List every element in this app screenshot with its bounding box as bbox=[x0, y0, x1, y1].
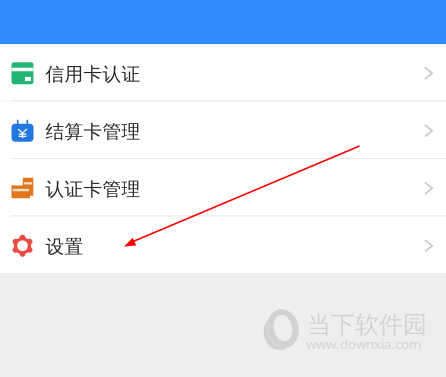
button[interactable]: 认证卡管理 bbox=[0, 159, 446, 215]
staticText: 结算卡管理 bbox=[45, 120, 140, 143]
staticText: www.downxia.com bbox=[306, 335, 421, 353]
button[interactable]: 设置 bbox=[0, 216, 446, 273]
button[interactable]: 信用卡认证 bbox=[0, 44, 446, 100]
staticText: 认证卡管理 bbox=[45, 178, 140, 201]
staticText: 设置 bbox=[45, 235, 83, 258]
staticText: 信用卡认证 bbox=[45, 63, 140, 86]
staticText: 当下软件园 bbox=[307, 310, 427, 339]
button[interactable]: 结算卡管理 bbox=[0, 101, 446, 158]
